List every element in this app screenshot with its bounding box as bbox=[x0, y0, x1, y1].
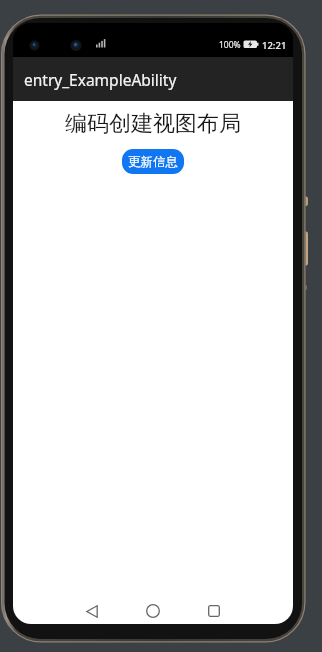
staticText: 100% bbox=[219, 39, 241, 51]
staticText: 编码创建视图布局 bbox=[65, 110, 241, 138]
staticText: entry_ExampleAbility bbox=[24, 69, 177, 90]
button[interactable] bbox=[194, 604, 234, 618]
button[interactable]: 更新信息 bbox=[122, 149, 184, 174]
button[interactable] bbox=[133, 604, 173, 618]
button[interactable] bbox=[72, 604, 112, 618]
staticText: 12:21 bbox=[262, 39, 287, 52]
staticText: 更新信息 bbox=[128, 154, 178, 170]
